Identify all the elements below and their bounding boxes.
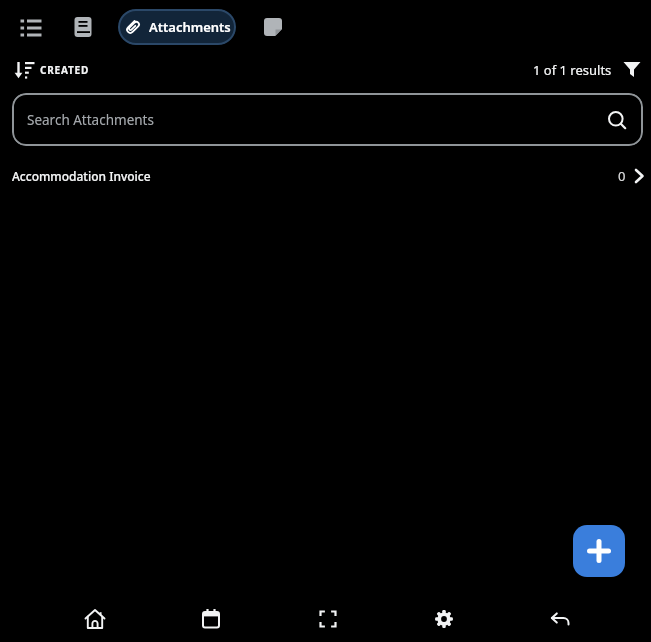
button[interactable] — [573, 525, 625, 577]
button[interactable] — [420, 595, 468, 642]
button[interactable] — [11, 7, 51, 47]
button[interactable] — [63, 7, 103, 47]
button[interactable] — [71, 595, 119, 642]
staticText: 0 — [618, 167, 626, 185]
button[interactable]: Search Attachments — [12, 93, 643, 146]
staticText: Accommodation Invoice — [12, 168, 151, 184]
button[interactable] — [537, 595, 585, 642]
button[interactable]: Attachments — [118, 9, 236, 45]
button[interactable] — [187, 595, 235, 642]
button[interactable]: Accommodation Invoice — [0, 156, 651, 196]
staticText: 1 of 1 results — [533, 61, 612, 79]
staticText: Search Attachments — [27, 111, 154, 129]
staticText: CREATED — [40, 63, 90, 77]
button[interactable] — [304, 595, 352, 642]
staticText: Attachments — [149, 18, 231, 36]
button[interactable] — [253, 7, 293, 47]
button[interactable] — [620, 58, 644, 82]
button[interactable]: CREATED — [13, 59, 90, 81]
